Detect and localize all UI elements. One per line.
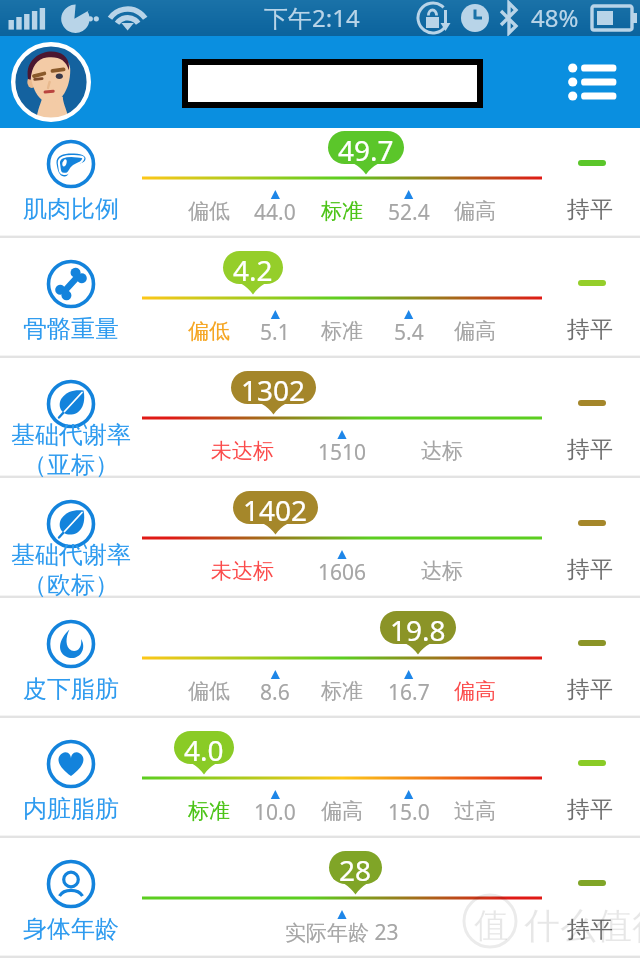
staticText: 19.8 xyxy=(390,611,446,644)
staticText: 标准 xyxy=(321,678,363,704)
staticText: 1606 xyxy=(318,558,367,587)
staticText: 偏低 xyxy=(188,678,230,704)
staticText: 持平 xyxy=(567,435,613,464)
button[interactable]: 基础代谢率 xyxy=(0,358,640,478)
staticText: 1402 xyxy=(243,491,308,524)
staticText: 4.2 xyxy=(233,251,273,284)
button[interactable]: 身体年龄 xyxy=(0,838,640,958)
button[interactable]: 基础代谢率 xyxy=(0,478,640,598)
staticText: 4.0 xyxy=(184,731,224,764)
staticText: 肌肉比例 xyxy=(23,194,119,224)
staticText: （亚标） xyxy=(23,450,119,480)
staticText: 偏高 xyxy=(454,198,496,224)
staticText: 15.0 xyxy=(388,798,430,827)
staticText: 基础代谢率 xyxy=(11,420,131,450)
staticText: 达标 xyxy=(421,558,463,584)
button[interactable]: Profile xyxy=(11,42,91,122)
button[interactable]: Menu xyxy=(566,54,622,110)
staticText: 偏高 xyxy=(454,678,496,704)
button[interactable]: 皮下脂肪 xyxy=(0,598,640,718)
staticText: 偏高 xyxy=(454,318,496,344)
staticText: 5.1 xyxy=(260,318,290,347)
staticText: 52.4 xyxy=(388,198,430,227)
staticText: （欧标） xyxy=(23,570,119,600)
staticText: 过高 xyxy=(454,798,496,824)
staticText: 1510 xyxy=(318,438,367,467)
staticText: 持平 xyxy=(567,795,613,824)
staticText: 标准 xyxy=(188,798,230,824)
staticText: 内脏脂肪 xyxy=(23,794,119,824)
staticText: 偏低 xyxy=(188,318,230,344)
staticText: 什么值得买 xyxy=(524,903,640,948)
staticText: 49.7 xyxy=(338,131,394,164)
button[interactable]: 内脏脂肪 xyxy=(0,718,640,838)
staticText: 未达标 xyxy=(211,438,274,464)
staticText: 偏低 xyxy=(188,198,230,224)
staticText: 下午2:14 xyxy=(264,1,360,34)
staticText: 10.0 xyxy=(254,798,296,827)
staticText: 8.6 xyxy=(260,678,290,707)
button[interactable]: 肌肉比例 xyxy=(0,118,640,238)
staticText: 皮下脂肪 xyxy=(23,674,119,704)
staticText: 28 xyxy=(339,851,372,884)
staticText: 标准 xyxy=(321,318,363,344)
staticText: 持平 xyxy=(567,315,613,344)
staticText: 达标 xyxy=(421,438,463,464)
staticText: 未达标 xyxy=(211,558,274,584)
staticText: 值 xyxy=(474,904,508,947)
staticText: 5.4 xyxy=(394,318,424,347)
staticText: 持平 xyxy=(567,675,613,704)
staticText: 1302 xyxy=(241,371,306,404)
staticText: 16.7 xyxy=(388,678,430,707)
staticText: 标准 xyxy=(321,198,363,224)
staticText: 骨骼重量 xyxy=(23,314,119,344)
staticText: 持平 xyxy=(567,915,613,944)
staticText: 44.0 xyxy=(254,198,296,227)
staticText: 持平 xyxy=(567,195,613,224)
staticText: 48% xyxy=(531,1,579,34)
staticText: 偏高 xyxy=(321,798,363,824)
button[interactable]: 骨骼重量 xyxy=(0,238,640,358)
staticText: 基础代谢率 xyxy=(11,540,131,570)
staticText: 持平 xyxy=(567,555,613,584)
staticText: 实际年龄 23 xyxy=(285,918,399,947)
staticText: 身体年龄 xyxy=(23,914,119,944)
